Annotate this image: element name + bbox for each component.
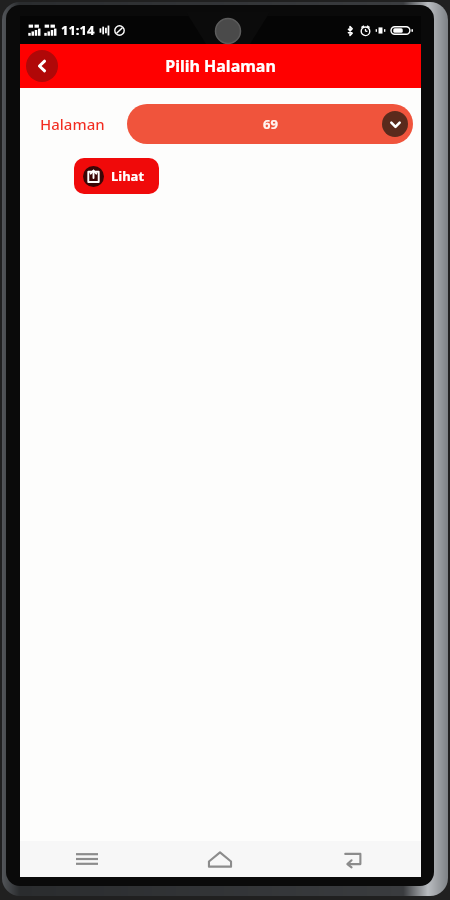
staticText: 69: [263, 115, 278, 133]
button[interactable]: Back: [287, 841, 421, 877]
button[interactable]: Lihat: [74, 158, 159, 194]
button[interactable]: Back: [26, 50, 58, 82]
staticText: 11:14: [61, 21, 95, 39]
button[interactable]: Recents: [20, 841, 153, 877]
staticText: Pilih Halaman: [165, 55, 276, 77]
button[interactable]: Home: [153, 841, 287, 877]
staticText: Halaman: [40, 114, 105, 134]
staticText: Lihat: [111, 167, 145, 185]
button[interactable]: 69: [127, 104, 413, 144]
